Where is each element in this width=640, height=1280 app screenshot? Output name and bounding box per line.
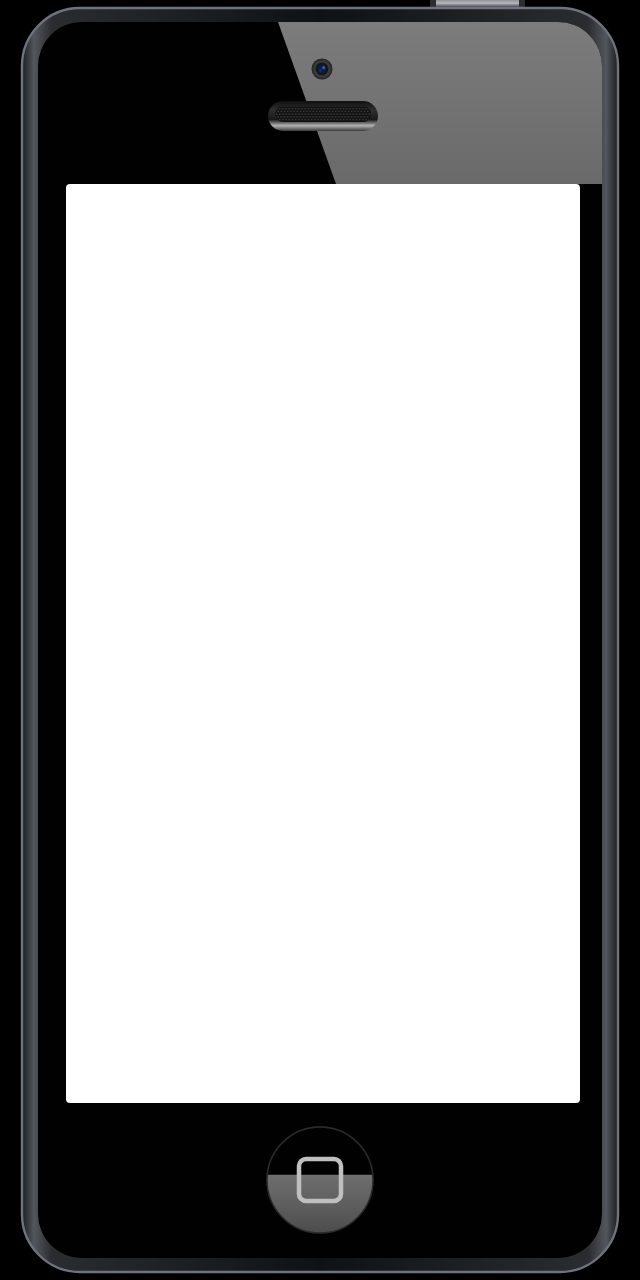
button[interactable]: Smartphone device mockup with blank scre… (0, 0, 640, 1280)
